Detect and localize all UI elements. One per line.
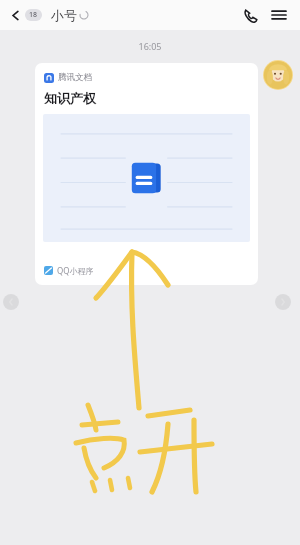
button[interactable]: Back, 18 unread <box>8 5 44 25</box>
button[interactable]: Next <box>275 294 291 310</box>
staticText: 18 <box>29 10 38 20</box>
button[interactable]: Previous <box>3 294 19 310</box>
staticText: QQ小程序 <box>57 265 94 276</box>
button[interactable]: Avatar <box>263 60 293 90</box>
staticText: 小号 <box>51 7 77 23</box>
staticText: 16:05 <box>138 40 162 52</box>
staticText: 知识产权 <box>44 90 96 106</box>
button[interactable]: Call <box>237 2 264 29</box>
button[interactable]: 腾讯文档 <box>35 63 258 285</box>
staticText: 腾讯文档 <box>58 72 92 83</box>
button[interactable]: Menu <box>266 3 292 27</box>
